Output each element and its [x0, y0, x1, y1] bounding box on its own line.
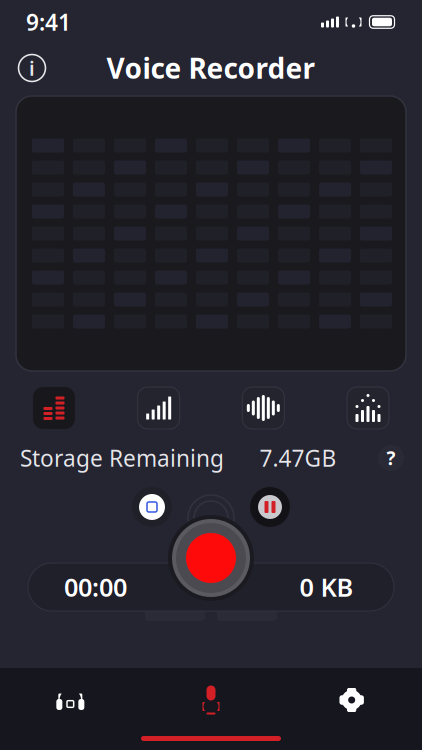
staticText: 0 KB — [299, 570, 353, 604]
staticText: 00:00 — [64, 570, 127, 604]
staticText: Voice Recorder — [106, 49, 315, 87]
button[interactable]: Help — [372, 439, 410, 477]
staticText: 9:41 — [26, 7, 71, 37]
button[interactable]: Visualizer style — [338, 385, 398, 431]
staticText: 7.47GB — [259, 443, 336, 473]
button[interactable]: Pause — [248, 485, 292, 529]
button[interactable]: Visualizer style — [233, 385, 293, 431]
button[interactable]: Playback — [0, 674, 141, 726]
staticText: i — [29, 55, 35, 81]
staticText: ? — [386, 446, 395, 470]
button[interactable]: Information — [12, 48, 52, 88]
button[interactable]: Play — [130, 485, 174, 529]
staticText: Storage Remaining — [20, 443, 224, 473]
button[interactable]: Record — [166, 513, 256, 603]
button[interactable]: Visualizer style — [129, 385, 189, 431]
button[interactable]: Record — [141, 674, 281, 726]
button[interactable]: Settings — [281, 674, 422, 726]
button[interactable]: Visualizer style — [24, 385, 84, 431]
